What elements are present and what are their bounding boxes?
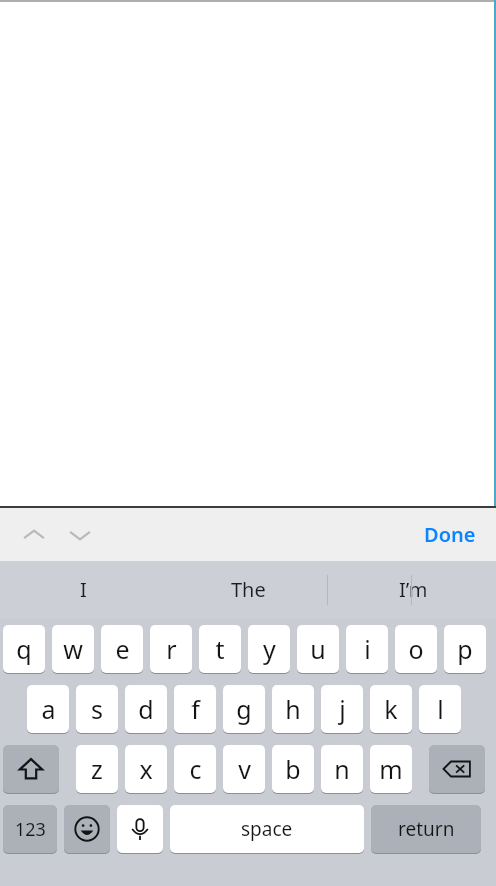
button[interactable]: 123 (3, 805, 57, 854)
button[interactable]: u (297, 625, 339, 674)
staticText: The (231, 576, 266, 603)
button[interactable]: w (52, 625, 94, 674)
staticText: q (16, 632, 32, 666)
staticText: p (457, 632, 473, 666)
button[interactable]: I (0, 561, 166, 618)
button[interactable]: t (199, 625, 241, 674)
staticText: return (398, 816, 455, 842)
staticText: u (310, 632, 326, 666)
staticText: o (408, 632, 424, 666)
staticText: m (379, 752, 403, 786)
button[interactable]: z (76, 745, 118, 794)
button[interactable]: k (370, 685, 412, 734)
button[interactable]: i (346, 625, 388, 674)
button[interactable]: c (174, 745, 216, 794)
staticText: v (238, 752, 251, 786)
staticText: y (263, 632, 276, 666)
button[interactable]: Dictation (117, 805, 163, 854)
staticText: Done (424, 521, 476, 548)
staticText: I (80, 576, 87, 603)
staticText: l (437, 692, 444, 726)
staticText: d (138, 692, 154, 726)
button[interactable]: n (321, 745, 363, 794)
staticText: c (189, 752, 202, 786)
button[interactable]: e (101, 625, 143, 674)
staticText: h (285, 692, 301, 726)
staticText: b (285, 752, 301, 786)
button[interactable]: Next (58, 513, 102, 557)
button[interactable]: m (370, 745, 412, 794)
staticText: x (139, 752, 153, 786)
button[interactable]: Previous (12, 513, 56, 557)
staticText: e (115, 632, 130, 666)
staticText: s (91, 692, 103, 726)
button[interactable]: g (223, 685, 265, 734)
button[interactable]: I’m (331, 561, 496, 618)
button[interactable]: space (170, 805, 364, 854)
button[interactable]: d (125, 685, 167, 734)
button[interactable]: l (419, 685, 461, 734)
button[interactable]: h (272, 685, 314, 734)
staticText: r (166, 632, 177, 666)
staticText: j (339, 692, 346, 726)
button[interactable]: Done (418, 515, 482, 554)
button[interactable]: j (321, 685, 363, 734)
staticText: I’m (399, 576, 428, 603)
staticText: k (384, 692, 398, 726)
staticText: 123 (15, 817, 46, 842)
button[interactable]: v (223, 745, 265, 794)
button[interactable]: p (444, 625, 486, 674)
button[interactable]: s (76, 685, 118, 734)
staticText: a (41, 692, 56, 726)
button[interactable]: b (272, 745, 314, 794)
button[interactable]: a (27, 685, 69, 734)
staticText: w (63, 632, 83, 666)
button[interactable]: f (174, 685, 216, 734)
button[interactable]: x (125, 745, 167, 794)
button[interactable]: Delete (429, 745, 485, 794)
button[interactable]: return (371, 805, 481, 854)
staticText: g (236, 692, 252, 726)
button[interactable]: y (248, 625, 290, 674)
staticText: i (364, 632, 371, 666)
button[interactable]: o (395, 625, 437, 674)
staticText: n (334, 752, 350, 786)
staticText: t (215, 632, 225, 666)
staticText: space (241, 816, 293, 842)
button[interactable]: Emoji (64, 805, 110, 854)
staticText: f (191, 692, 200, 726)
button[interactable]: r (150, 625, 192, 674)
button[interactable]: q (3, 625, 45, 674)
staticText: z (91, 752, 103, 786)
button[interactable]: The (166, 561, 331, 618)
button[interactable]: Shift (3, 745, 59, 794)
